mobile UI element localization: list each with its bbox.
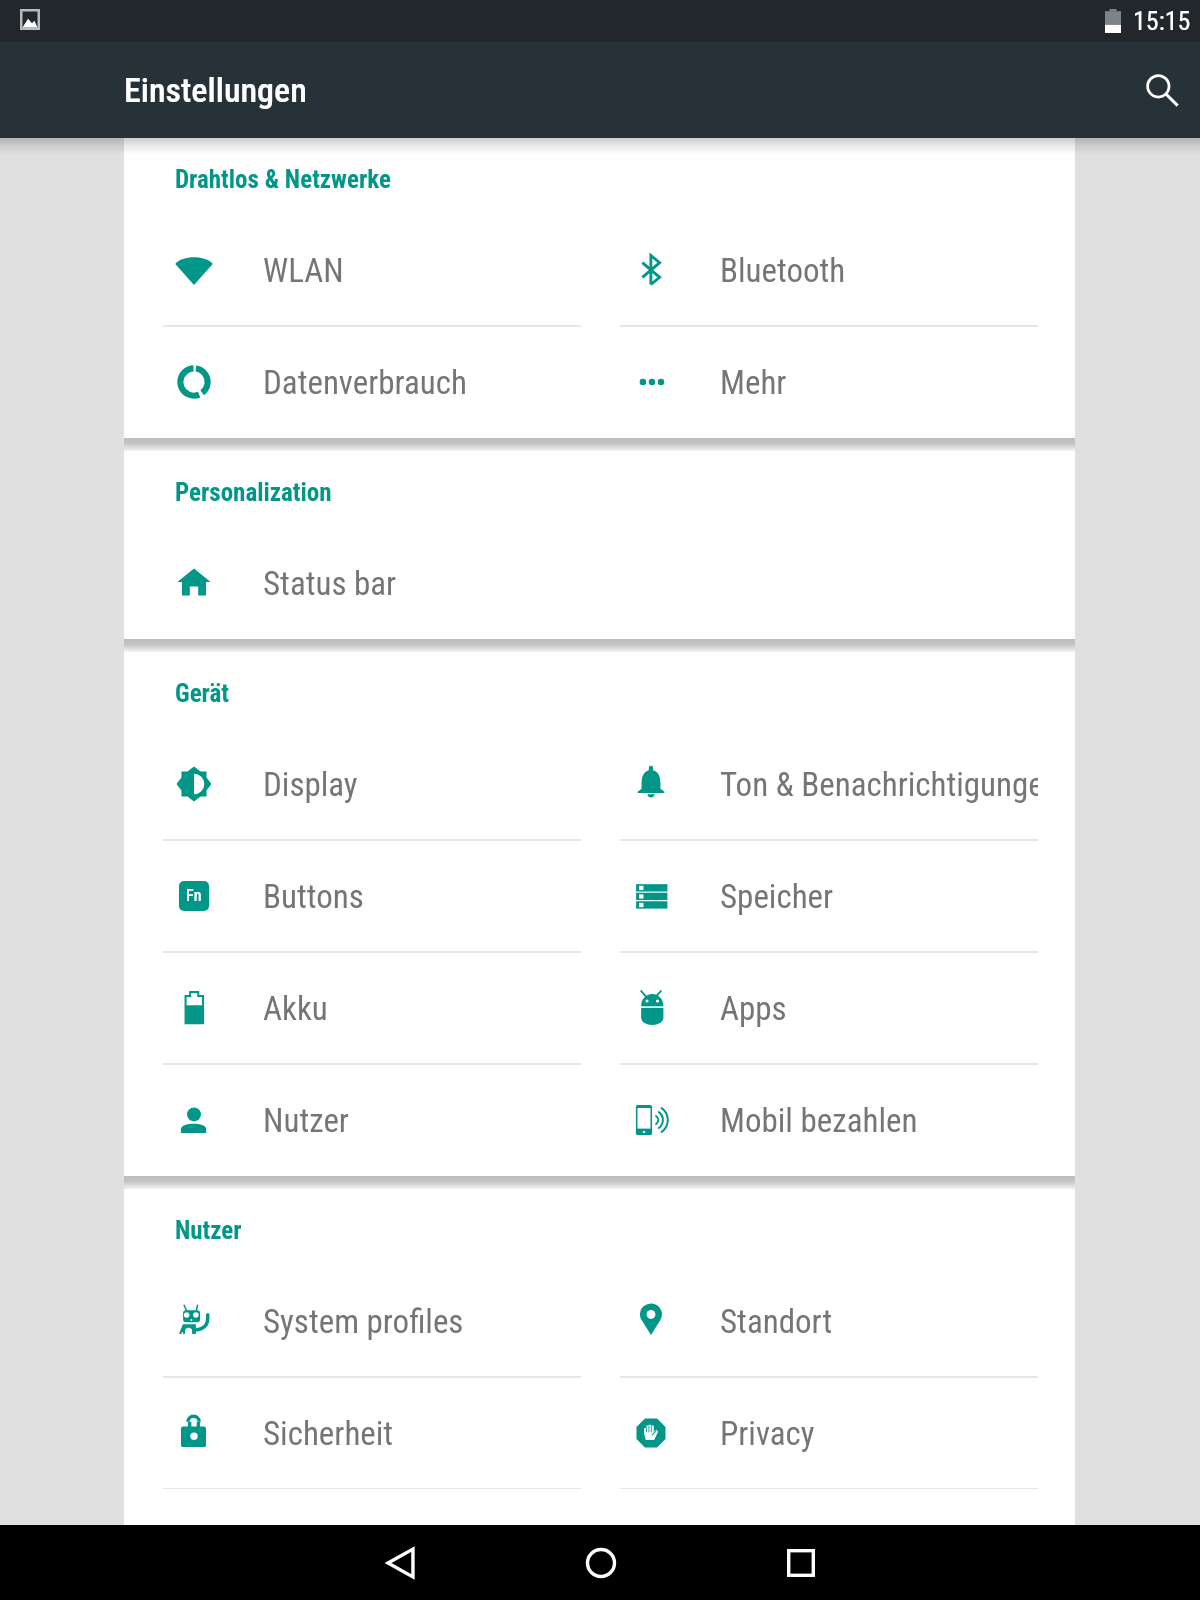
staticText: Drahtlos & Netzwerke <box>175 165 391 194</box>
staticText: Fn <box>186 886 202 905</box>
staticText: Status bar <box>263 564 397 603</box>
staticText: Ton & Benachrichtigungen <box>720 765 1038 804</box>
button[interactable]: Mobil bezahlen <box>581 1064 1038 1176</box>
staticText: Apps <box>720 989 787 1028</box>
staticText: Privacy <box>720 1414 815 1453</box>
staticText: Datenverbrauch <box>263 363 467 402</box>
staticText: Personalization <box>175 478 332 507</box>
button[interactable]: Status bar <box>124 527 581 639</box>
button[interactable]: Speicher <box>581 840 1038 952</box>
staticText: 15:15 <box>1133 6 1191 36</box>
button[interactable]: Nutzer <box>124 1064 581 1176</box>
staticText: Nutzer <box>263 1101 349 1140</box>
button[interactable]: Mehr <box>581 326 1038 438</box>
button[interactable]: Sicherheit <box>124 1377 581 1489</box>
button[interactable]: Bluetooth <box>581 214 1038 326</box>
button[interactable]: Home <box>563 1525 638 1600</box>
staticText: Mehr <box>720 363 787 402</box>
staticText: Sicherheit <box>263 1414 394 1453</box>
button[interactable]: Standort <box>581 1265 1038 1377</box>
staticText: Mobil bezahlen <box>720 1101 918 1140</box>
button[interactable]: Apps <box>581 952 1038 1064</box>
staticText: Speicher <box>720 877 834 916</box>
button[interactable]: Datenverbrauch <box>124 326 581 438</box>
staticText: Einstellungen <box>124 70 307 110</box>
button[interactable]: Fn <box>124 840 581 952</box>
button[interactable]: WLAN <box>124 214 581 326</box>
staticText: Standort <box>720 1302 833 1341</box>
button[interactable]: Display <box>124 728 581 840</box>
button[interactable]: Akku <box>124 952 581 1064</box>
button[interactable]: System profiles <box>124 1265 581 1377</box>
staticText: System profiles <box>263 1302 464 1341</box>
staticText: Gerät <box>175 679 229 708</box>
button[interactable]: Back <box>363 1525 438 1600</box>
button[interactable]: Recents <box>763 1525 838 1600</box>
staticText: WLAN <box>263 251 344 290</box>
staticText: Buttons <box>263 877 364 916</box>
staticText: Akku <box>263 989 328 1028</box>
staticText: Display <box>263 765 358 804</box>
button[interactable]: Privacy <box>581 1377 1038 1489</box>
staticText: Bluetooth <box>720 251 846 290</box>
button[interactable]: Ton & Benachrichtigungen <box>581 728 1038 840</box>
staticText: Nutzer <box>175 1216 242 1245</box>
button[interactable]: Search <box>1130 58 1194 122</box>
